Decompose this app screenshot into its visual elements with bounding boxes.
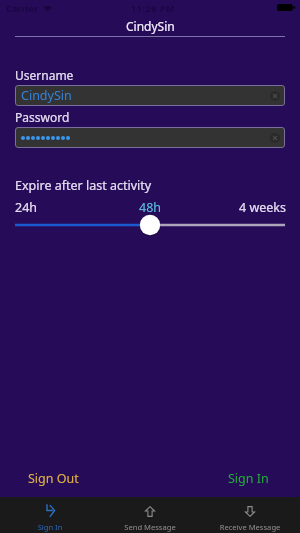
button[interactable]: Send Message	[100, 497, 200, 533]
button[interactable]: Clear text	[270, 91, 280, 101]
button[interactable]: Sign In	[222, 466, 275, 491]
button[interactable]: Clear text	[15, 127, 285, 148]
staticText: Carrier	[6, 2, 39, 14]
staticText: Sign In	[0, 522, 100, 532]
staticText: 48h	[139, 199, 162, 216]
button[interactable]: Sign In	[0, 497, 100, 533]
button[interactable]: Clear text	[270, 133, 280, 143]
staticText: Sign Out	[28, 470, 79, 487]
button[interactable]: Expiry slider	[0, 214, 300, 236]
staticText: 11:29 PM	[131, 2, 175, 14]
staticText: Receive Message	[200, 522, 300, 532]
button[interactable]: Sign Out	[22, 466, 85, 491]
staticText: CindySin	[21, 87, 72, 104]
staticText: Expire after last activity	[15, 177, 152, 194]
staticText: Send Message	[100, 522, 200, 532]
staticText: Username	[15, 67, 74, 83]
button[interactable]: CindySin	[15, 85, 285, 106]
staticText: Sign In	[228, 470, 269, 487]
staticText: CindySin	[126, 18, 175, 34]
staticText: Password	[15, 109, 70, 125]
staticText: 4 weeks	[239, 199, 286, 216]
staticText: 24h	[15, 199, 38, 216]
button[interactable]: Receive Message	[200, 497, 300, 533]
